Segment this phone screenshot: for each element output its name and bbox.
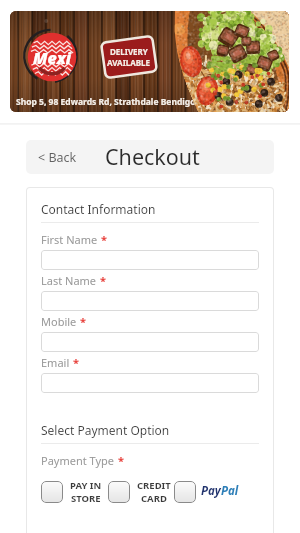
staticText: First Name — [41, 232, 98, 247]
button[interactable]: Credit card — [108, 481, 130, 503]
staticText: * — [80, 314, 86, 329]
button[interactable]: PayPal — [174, 481, 239, 503]
staticText: AVAILABLE — [107, 57, 151, 68]
button[interactable] — [41, 373, 259, 393]
staticText: CARD — [141, 492, 167, 505]
staticText: Checkout — [105, 142, 200, 171]
button[interactable] — [41, 332, 259, 352]
button[interactable]: Pay in store — [41, 481, 63, 503]
staticText: Mobile — [41, 314, 77, 329]
button[interactable]: Mexi restaurant banner — [10, 11, 289, 112]
staticText: DELIVERY — [110, 46, 148, 57]
staticText: * — [101, 232, 107, 247]
button[interactable]: < Back — [26, 140, 88, 174]
staticText: < Back — [38, 149, 77, 166]
staticText: Contact Information — [41, 201, 156, 217]
staticText: * — [100, 273, 106, 288]
button[interactable]: PayPal — [174, 481, 196, 503]
staticText: Pay — [201, 483, 221, 499]
staticText: Pal — [221, 483, 239, 499]
staticText: Email — [41, 355, 70, 370]
staticText: Payment Type — [41, 453, 115, 468]
staticText: Last Name — [41, 273, 97, 288]
button[interactable] — [41, 250, 259, 270]
button[interactable] — [41, 291, 259, 311]
button[interactable]: Pay in store — [41, 479, 102, 505]
staticText: * — [73, 355, 79, 370]
staticText: STORE — [71, 492, 101, 505]
staticText: CREDIT — [137, 479, 171, 492]
staticText: Select Payment Option — [41, 422, 170, 438]
staticText: * — [118, 453, 124, 468]
staticText: Shop 5, 98 Edwards Rd, Strathdale Bendig… — [16, 96, 196, 108]
staticText: Mexi — [33, 47, 72, 69]
staticText: PAY IN — [70, 479, 102, 492]
button[interactable]: Credit card — [108, 479, 171, 505]
